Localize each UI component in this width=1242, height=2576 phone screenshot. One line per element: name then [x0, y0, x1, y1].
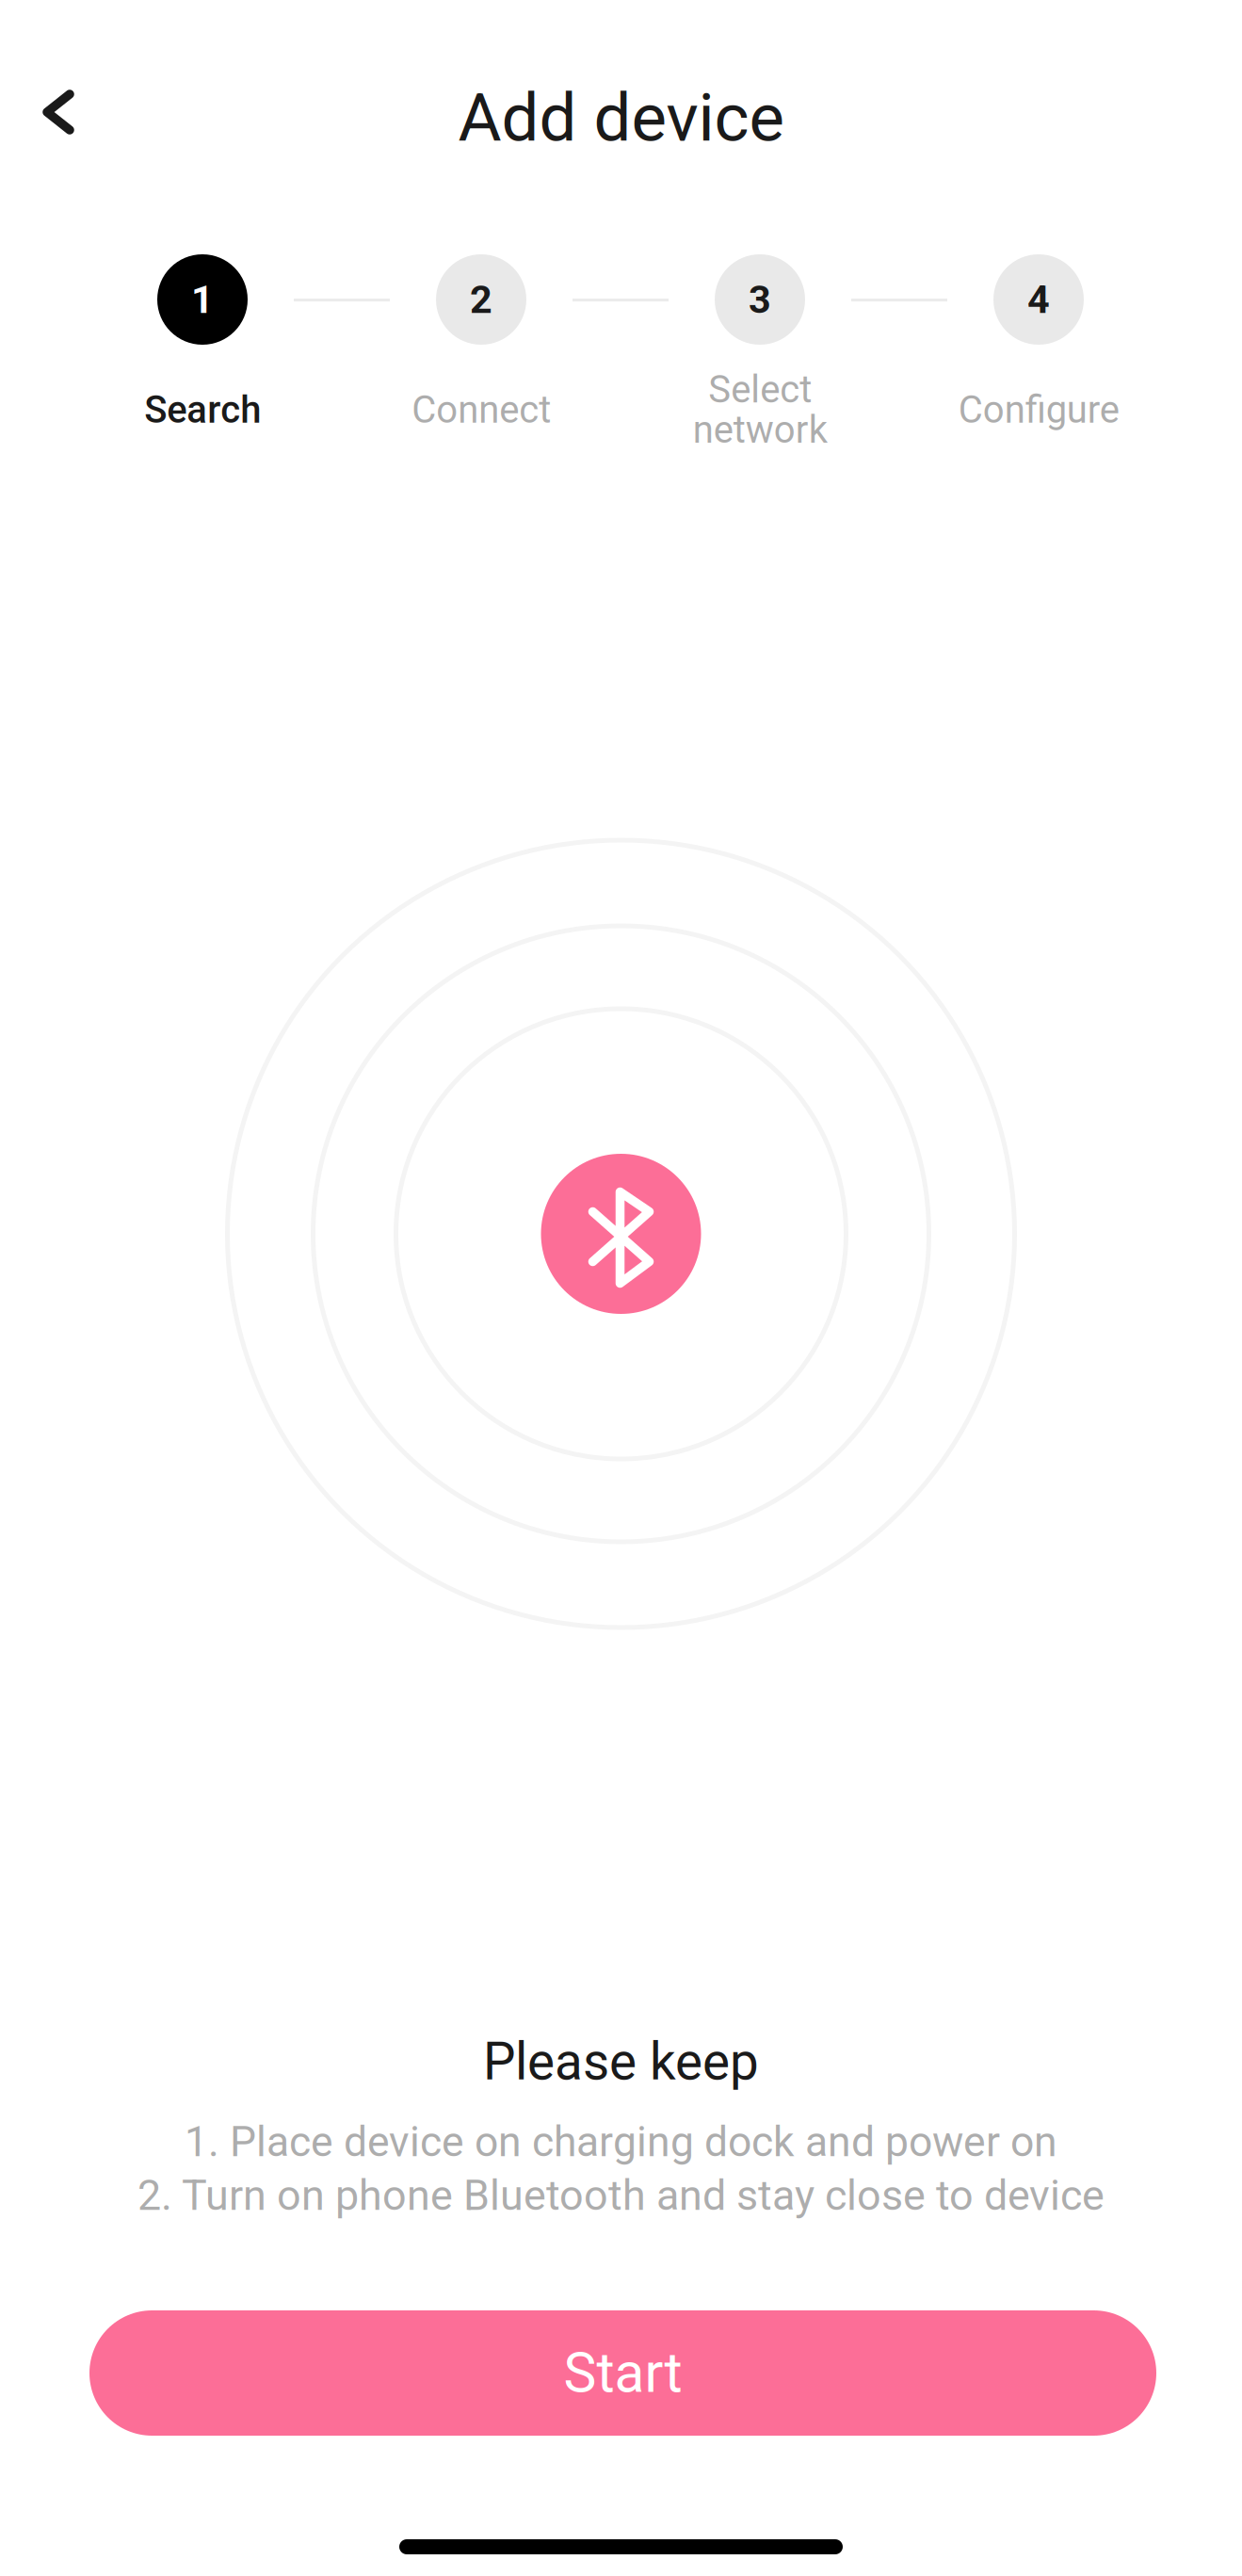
- staticText: Search: [144, 388, 261, 432]
- staticText: Please keep: [483, 2032, 759, 2092]
- staticText: Configure: [958, 388, 1119, 432]
- staticText: Connect: [411, 388, 551, 432]
- staticText: 3: [749, 277, 771, 322]
- staticText: 2. Turn on phone Bluetooth and stay clos…: [137, 2171, 1105, 2220]
- staticText: 1. Place device on charging dock and pow…: [185, 2117, 1057, 2166]
- staticText: 2: [470, 277, 492, 322]
- button[interactable]: Start: [89, 2310, 1156, 2436]
- staticText: Add device: [458, 79, 784, 157]
- staticText: Start: [564, 2341, 682, 2405]
- staticText: 1: [191, 277, 214, 322]
- button[interactable]: Back: [7, 60, 110, 164]
- staticText: Select network: [693, 367, 827, 452]
- staticText: 4: [1027, 277, 1050, 322]
